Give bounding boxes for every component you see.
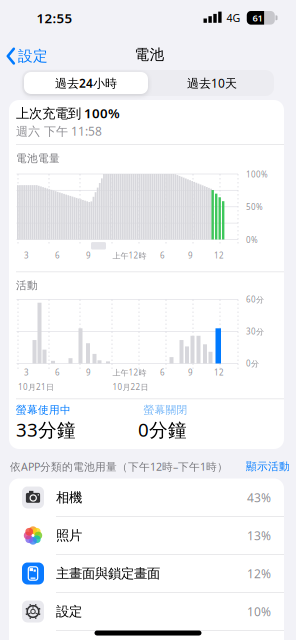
staticText: 照片 bbox=[56, 527, 82, 544]
staticText: 6 bbox=[160, 250, 165, 261]
staticText: 螢幕關閉 bbox=[143, 403, 187, 416]
button[interactable]: 螢幕關閉 bbox=[143, 403, 263, 417]
button[interactable]: 螢幕使用中 bbox=[16, 403, 136, 417]
button[interactable]: 相機 bbox=[9, 478, 284, 516]
staticText: 主畫面與鎖定畫面 bbox=[56, 565, 160, 582]
staticText: 上午12時 bbox=[112, 367, 146, 378]
button[interactable]: 過去10天 bbox=[150, 72, 274, 94]
staticText: 電池 bbox=[134, 46, 164, 64]
staticText: 6 bbox=[55, 250, 60, 261]
staticText: 100% bbox=[246, 169, 268, 180]
button[interactable]: 設定 bbox=[1, 41, 65, 71]
staticText: 電池電量 bbox=[16, 152, 60, 165]
staticText: 9 bbox=[86, 250, 91, 261]
staticText: 0分鐘 bbox=[138, 417, 187, 442]
staticText: 50% bbox=[246, 202, 263, 212]
staticText: 10月21日 bbox=[18, 382, 54, 392]
staticText: 33分鐘 bbox=[16, 417, 76, 442]
button[interactable]: 過去24小時 bbox=[24, 72, 148, 94]
staticText: 3 bbox=[24, 250, 29, 261]
staticText: 9 bbox=[188, 250, 193, 261]
staticText: 0% bbox=[246, 235, 258, 245]
staticText: 6 bbox=[55, 367, 60, 378]
staticText: 61 bbox=[252, 12, 262, 24]
staticText: 0分 bbox=[246, 358, 259, 369]
staticText: 12 bbox=[214, 367, 224, 378]
staticText: 30分 bbox=[246, 326, 264, 337]
staticText: 顯示活動 bbox=[246, 460, 290, 473]
staticText: 3 bbox=[24, 367, 29, 378]
staticText: 依APP分類的電池用量（下午12時–下午1時） bbox=[10, 459, 228, 474]
staticText: 9 bbox=[86, 367, 91, 378]
staticText: 設定 bbox=[18, 47, 48, 65]
staticText: 10月22日 bbox=[112, 382, 148, 392]
staticText: 活動 bbox=[16, 279, 38, 292]
button[interactable]: 設定 bbox=[9, 592, 284, 630]
staticText: 12:55 bbox=[36, 9, 72, 27]
staticText: 12% bbox=[247, 565, 271, 581]
staticText: 43% bbox=[247, 489, 271, 505]
staticText: 上午12時 bbox=[112, 250, 146, 261]
staticText: 60分 bbox=[246, 294, 264, 305]
staticText: 10% bbox=[247, 603, 271, 619]
staticText: 螢幕使用中 bbox=[16, 403, 71, 416]
staticText: 過去24小時 bbox=[55, 75, 117, 91]
staticText: 9 bbox=[188, 367, 193, 378]
staticText: 上次充電到 100% bbox=[16, 104, 120, 122]
staticText: 6 bbox=[160, 367, 165, 378]
staticText: 12 bbox=[214, 250, 224, 261]
staticText: 4G bbox=[226, 11, 240, 25]
staticText: 過去10天 bbox=[187, 75, 237, 91]
staticText: 13% bbox=[247, 527, 271, 543]
staticText: 相機 bbox=[56, 489, 82, 506]
button[interactable]: 主畫面與鎖定畫面 bbox=[9, 554, 284, 592]
staticText: 設定 bbox=[56, 603, 82, 620]
button[interactable]: 照片 bbox=[9, 516, 284, 554]
button[interactable]: 顯示活動 bbox=[190, 459, 290, 473]
staticText: 週六 下午 11:58 bbox=[16, 123, 102, 139]
